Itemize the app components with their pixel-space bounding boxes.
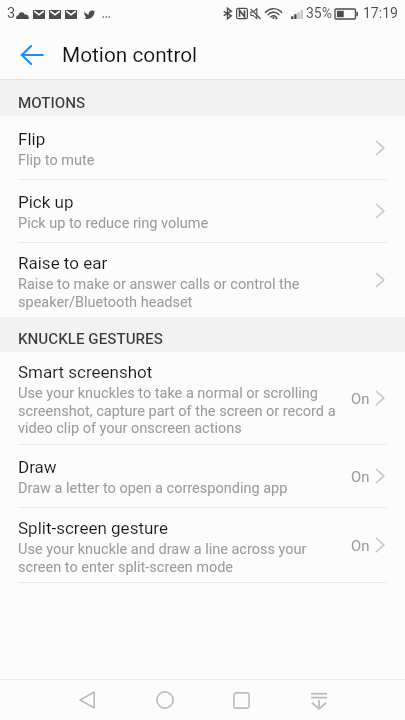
button[interactable]: Smart screenshot (0, 352, 405, 444)
staticText: KNUCKLE GESTURES (18, 330, 163, 348)
button[interactable]: Flip (0, 116, 405, 179)
staticText: Use your knuckles to take a normal or sc… (18, 385, 336, 436)
staticText: Raise to ear (18, 253, 108, 273)
button[interactable]: Back (6, 26, 58, 79)
button[interactable]: Recent apps (203, 680, 280, 720)
staticText: On (351, 468, 370, 485)
button[interactable]: Raise to ear (0, 243, 405, 317)
staticText: Raise to make or answer calls or control… (18, 276, 300, 310)
staticText: On (351, 390, 370, 407)
button[interactable]: Back (24, 680, 150, 720)
staticText: Draw a letter to open a corresponding ap… (18, 480, 288, 497)
staticText: Split-screen gesture (18, 518, 168, 538)
staticText: 35% (306, 5, 332, 21)
staticText: Pick up to reduce ring volume (18, 215, 209, 232)
staticText: Draw (18, 457, 57, 477)
button[interactable]: Home (126, 680, 203, 720)
staticText: Use your knuckle and draw a line across … (18, 541, 307, 575)
button[interactable]: Hide navigation bar (280, 680, 357, 720)
staticText: Smart screenshot (18, 362, 153, 382)
staticText: 3 (7, 5, 16, 22)
staticText: 17:19 (363, 5, 398, 21)
staticText: On (351, 537, 370, 554)
staticText: Flip (18, 129, 46, 149)
staticText: Pick up (18, 192, 74, 212)
button[interactable]: Split-screen gesture (0, 508, 405, 582)
staticText: Motion control (62, 43, 198, 67)
button[interactable]: Pick up (0, 180, 405, 242)
button[interactable]: Draw (0, 445, 405, 507)
staticText: MOTIONS (18, 94, 86, 112)
staticText: Flip to mute (18, 152, 95, 169)
